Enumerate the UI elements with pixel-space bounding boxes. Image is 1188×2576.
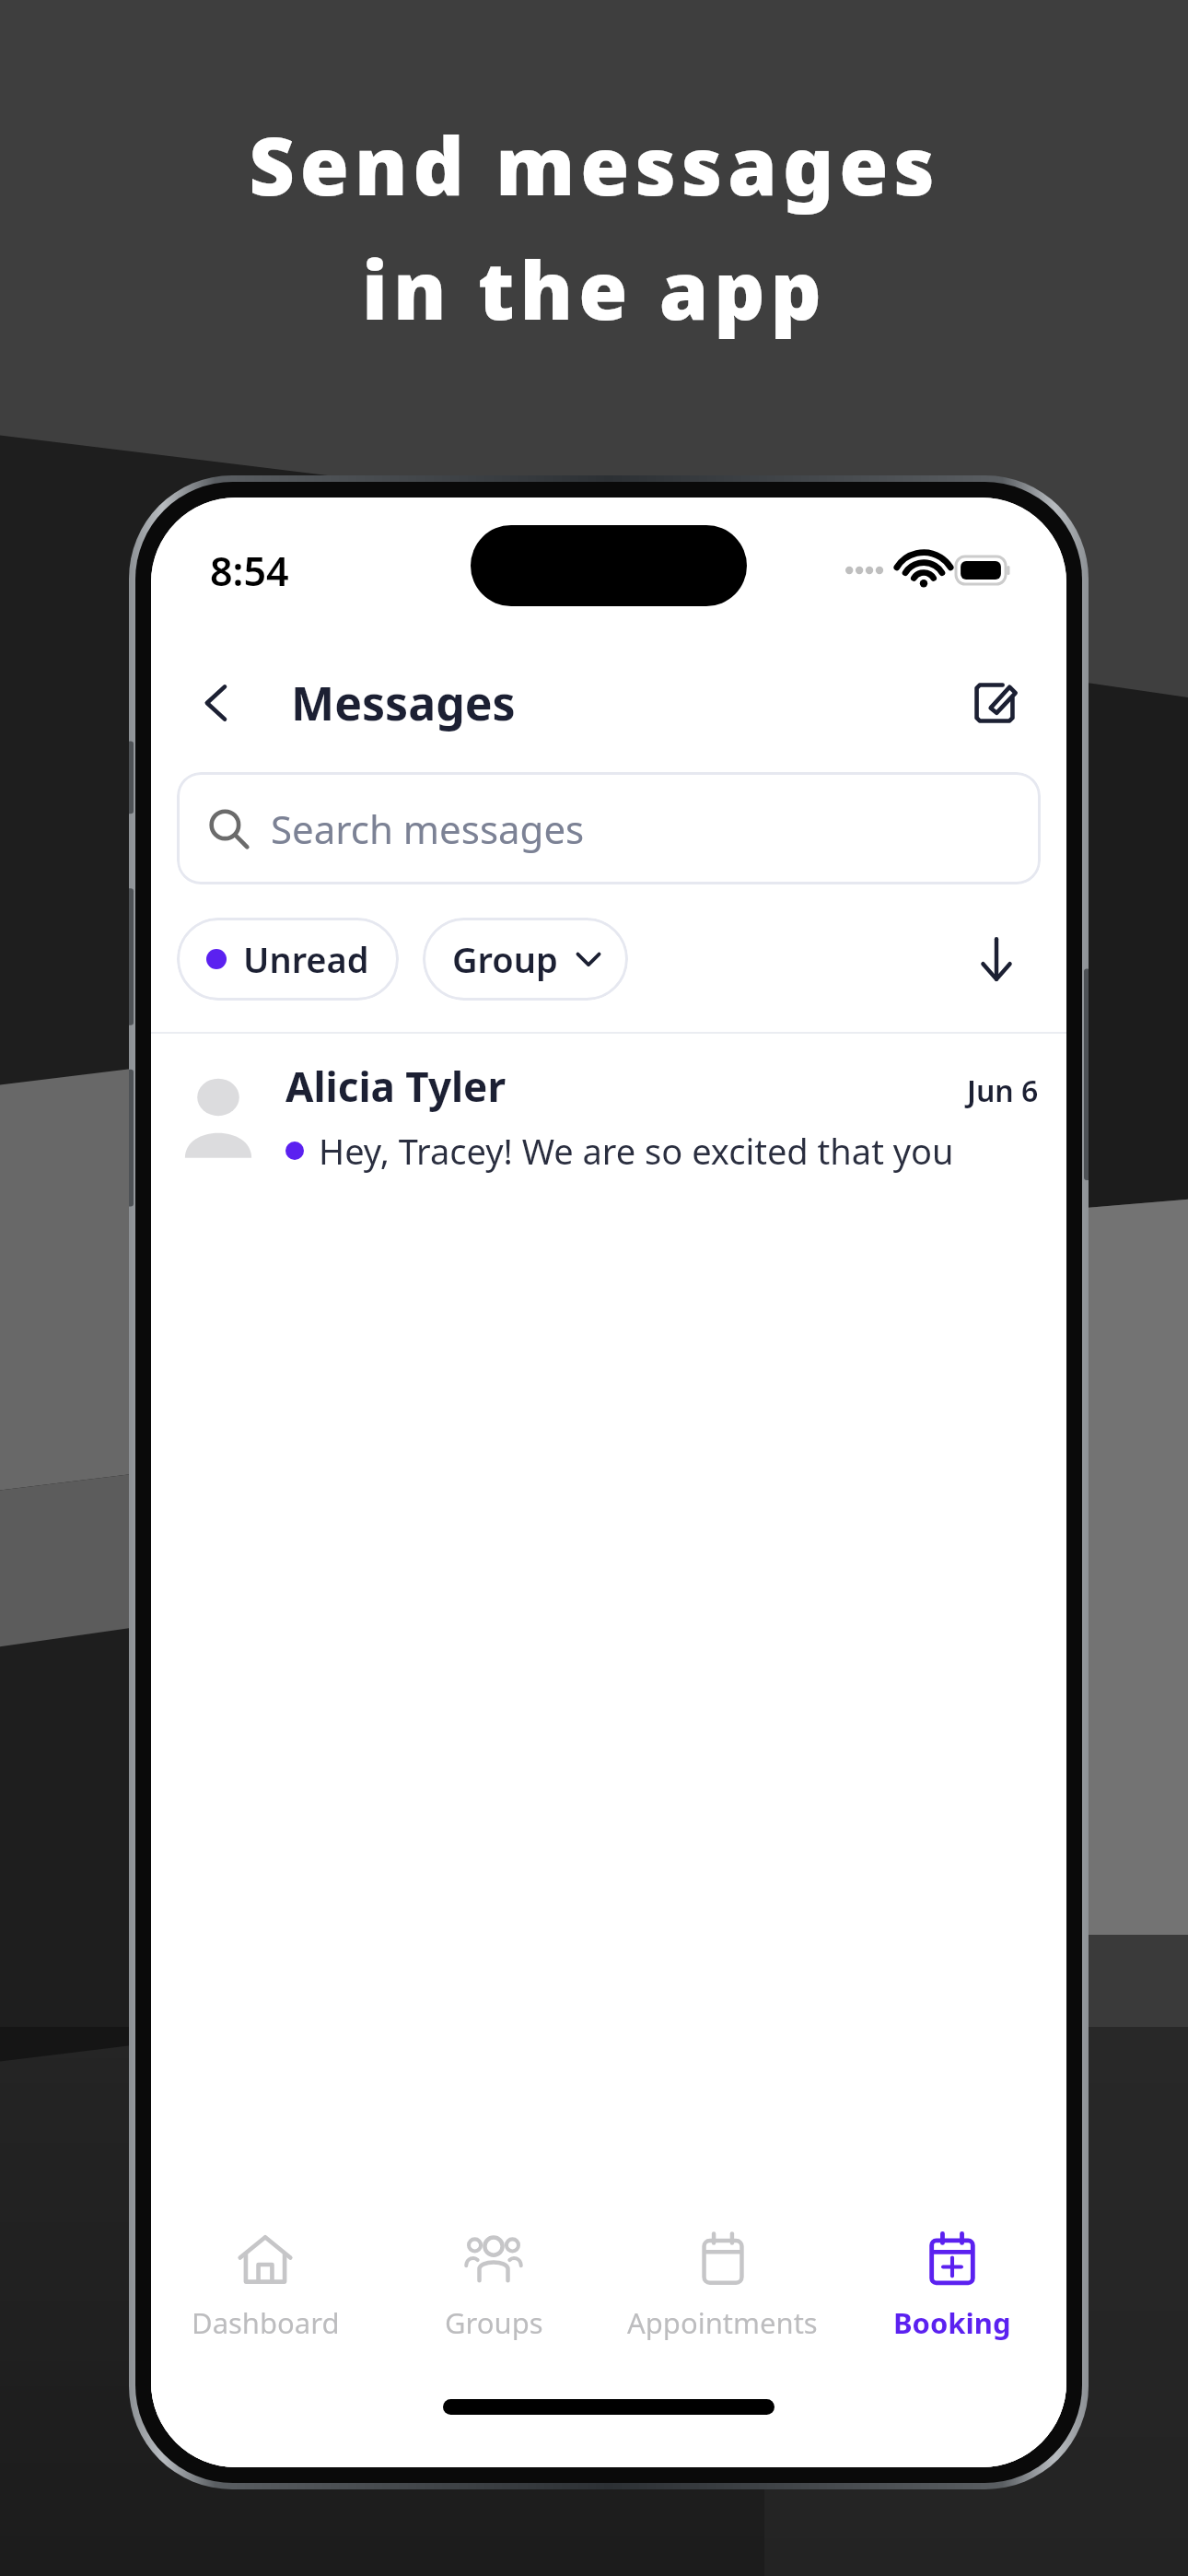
button[interactable]: Sort [958, 920, 1035, 998]
staticText: Alicia Tyler [285, 1059, 507, 1114]
staticText: Send messages [249, 111, 940, 218]
staticText: 8:54 [210, 544, 289, 598]
button[interactable]: Search messages [177, 772, 1041, 884]
button[interactable]: Alicia Tyler [151, 1034, 1066, 1200]
button[interactable]: Back [175, 661, 260, 745]
staticText: Dashboard [192, 2303, 340, 2342]
staticText: Unread [243, 935, 369, 983]
staticText: Jun 6 [967, 1071, 1039, 1111]
staticText: Group [452, 935, 558, 983]
button[interactable]: Appointments [608, 2209, 837, 2384]
staticText: Hey, Tracey! We are so excited that you … [319, 1127, 967, 1175]
staticText: Search messages [271, 802, 585, 855]
button[interactable]: Dashboard [151, 2209, 379, 2384]
button[interactable]: Compose new message [952, 661, 1037, 745]
button[interactable]: Group [423, 918, 628, 1001]
staticText: Appointments [627, 2303, 818, 2342]
staticText: Groups [445, 2303, 543, 2342]
button[interactable]: Unread [177, 918, 399, 1001]
staticText: in the app [362, 235, 827, 343]
button[interactable]: Booking [837, 2209, 1066, 2384]
staticText: Booking [893, 2303, 1011, 2342]
button[interactable]: Groups [379, 2209, 608, 2384]
staticText: Messages [291, 672, 516, 734]
